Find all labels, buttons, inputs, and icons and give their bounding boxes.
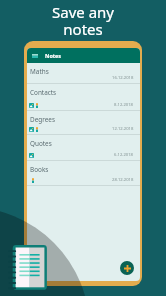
staticText: Notes [45, 52, 62, 59]
staticText: Maths [30, 67, 49, 76]
staticText: Contacts [30, 88, 57, 97]
staticText: Quotes [30, 139, 52, 148]
staticText: Save any notes [52, 2, 114, 40]
button[interactable]: Add note [120, 261, 134, 275]
button[interactable]: Degrees [27, 111, 140, 135]
button[interactable]: Books [27, 161, 140, 186]
staticText: Books [30, 165, 49, 174]
staticText: 28.12.2018 [112, 177, 134, 183]
button[interactable]: Quotes [27, 135, 140, 161]
button[interactable]: Maths [27, 63, 140, 84]
button[interactable]: Menu [27, 48, 140, 63]
staticText: 8.12.2018 [114, 102, 134, 108]
button[interactable]: Contacts [27, 84, 140, 111]
staticText: Degrees [30, 115, 55, 124]
staticText: 16.12.2018 [112, 75, 134, 81]
staticText: 12.12.2018 [112, 126, 134, 132]
button[interactable]: Menu [32, 54, 38, 58]
staticText: 6.12.2018 [114, 152, 134, 158]
